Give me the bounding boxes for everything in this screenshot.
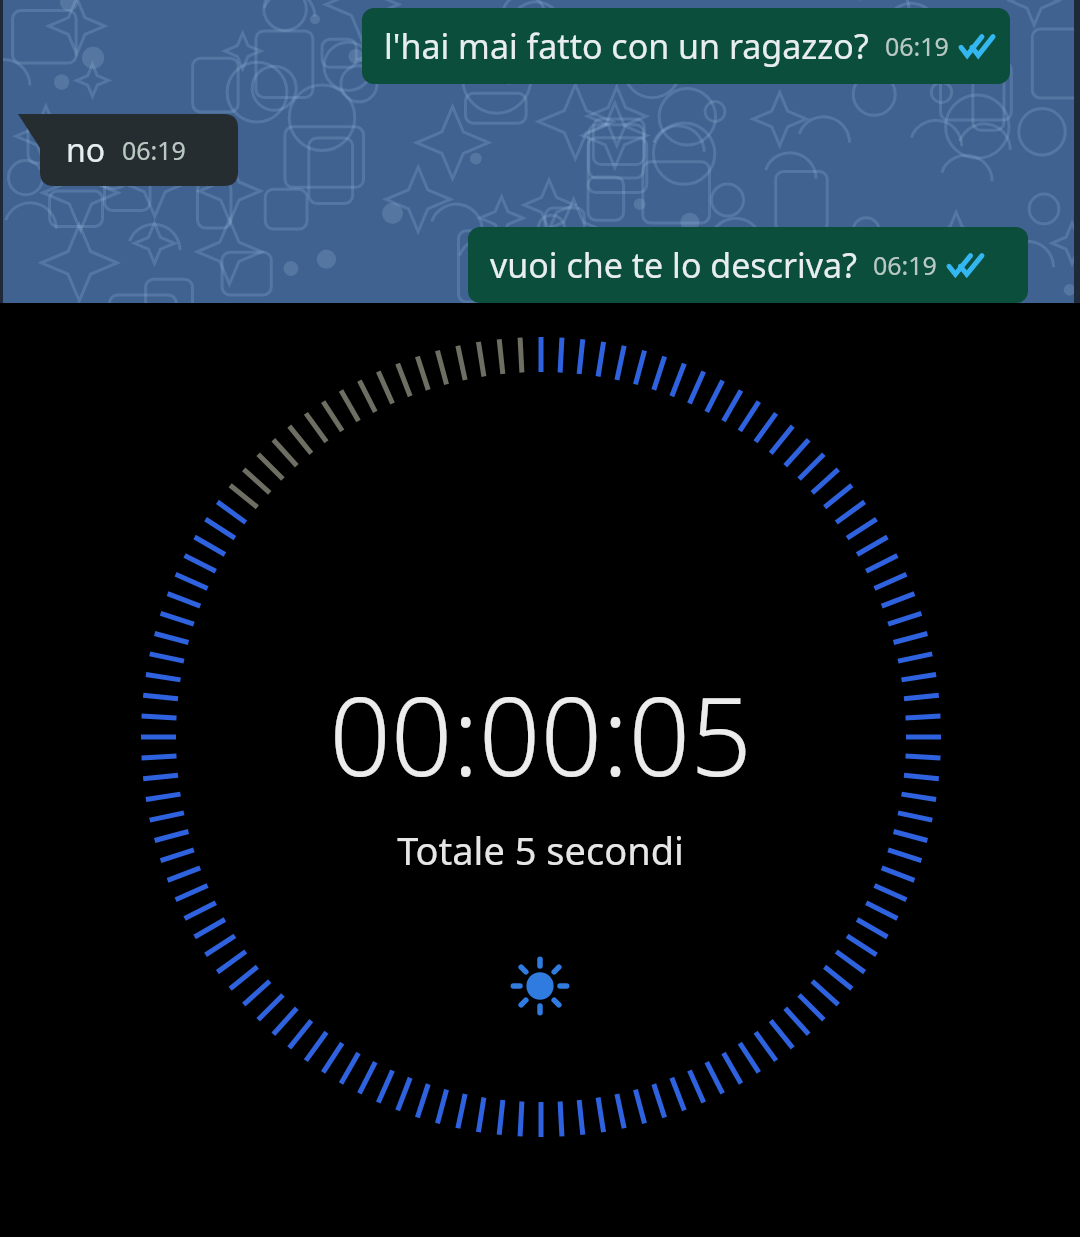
- staticText: l'hai mai fatto con un ragazzo?: [384, 23, 869, 69]
- staticText: 00:00:05: [329, 661, 752, 808]
- button[interactable]: vuoi che te lo descriva?: [468, 227, 1028, 303]
- staticText: no: [66, 128, 106, 172]
- button[interactable]: no: [18, 114, 238, 186]
- staticText: vuoi che te lo descriva?: [490, 242, 857, 288]
- button[interactable]: Brightness: [502, 948, 578, 1024]
- staticText: 06:19: [122, 133, 186, 167]
- staticText: 06:19: [885, 29, 949, 63]
- staticText: 06:19: [873, 248, 937, 282]
- staticText: Totale 5 secondi: [397, 824, 684, 876]
- button[interactable]: l'hai mai fatto con un ragazzo?: [362, 8, 1010, 84]
